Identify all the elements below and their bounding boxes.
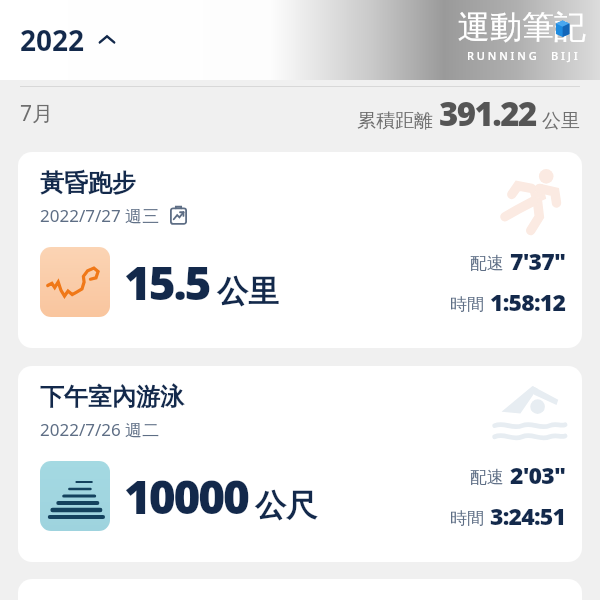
staticText: 配速 xyxy=(470,253,504,274)
button[interactable]: 黃昏跑步 xyxy=(18,152,582,348)
staticText: 記 xyxy=(554,7,586,47)
staticText: 10000 xyxy=(124,465,248,528)
staticText: 391.22 xyxy=(439,91,536,136)
staticText: 運動筆 xyxy=(458,7,554,47)
staticText: 7'37" xyxy=(510,245,566,276)
staticText: B I J I xyxy=(551,48,578,63)
staticText: 3:24:51 xyxy=(490,500,566,531)
staticText: 7月 xyxy=(20,99,54,128)
button[interactable]: 2022 xyxy=(20,21,117,59)
staticText: 累積距離 xyxy=(357,109,433,133)
staticText: 公尺 xyxy=(255,486,317,525)
staticText: 2022/7/26 週二 xyxy=(40,418,160,441)
staticText: 2022/7/27 週三 xyxy=(40,204,160,227)
staticText: 黃昏跑步 xyxy=(40,168,136,198)
staticText: 2'03" xyxy=(510,459,566,490)
other: View chart xyxy=(169,206,188,225)
staticText: 15.5 xyxy=(124,251,210,314)
staticText: 公里 xyxy=(542,109,580,133)
staticText: 時間 xyxy=(450,294,484,315)
staticText: 2022 xyxy=(20,21,85,59)
button[interactable]: 下午室內游泳 xyxy=(18,366,582,562)
staticText: 1:58:12 xyxy=(490,286,566,317)
other: Collapse year xyxy=(97,30,117,50)
staticText: R U N N I N G xyxy=(467,48,537,63)
staticText: 公里 xyxy=(217,272,279,311)
staticText: 下午室內游泳 xyxy=(40,382,184,412)
staticText: 配速 xyxy=(470,467,504,488)
staticText: 時間 xyxy=(450,508,484,529)
